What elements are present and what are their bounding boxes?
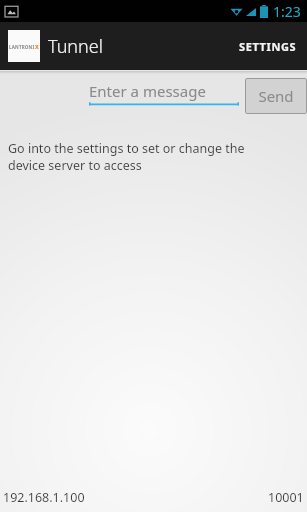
button[interactable]: Send bbox=[245, 78, 307, 114]
staticText: 192.168.1.100 bbox=[3, 489, 85, 506]
staticText: 10001 bbox=[268, 489, 304, 506]
staticText: Tunnel bbox=[48, 34, 103, 59]
button[interactable]: Enter a message bbox=[89, 78, 239, 107]
staticText: X bbox=[35, 43, 39, 50]
staticText: Go into the settings to set or change th… bbox=[8, 140, 277, 174]
button[interactable]: SETTINGS bbox=[229, 22, 307, 70]
staticText: SETTINGS bbox=[239, 39, 297, 54]
staticText: Enter a message bbox=[89, 81, 206, 101]
staticText: LANTRONI bbox=[9, 44, 35, 50]
staticText: 1:23 bbox=[273, 2, 301, 21]
staticText: Send bbox=[258, 86, 294, 106]
